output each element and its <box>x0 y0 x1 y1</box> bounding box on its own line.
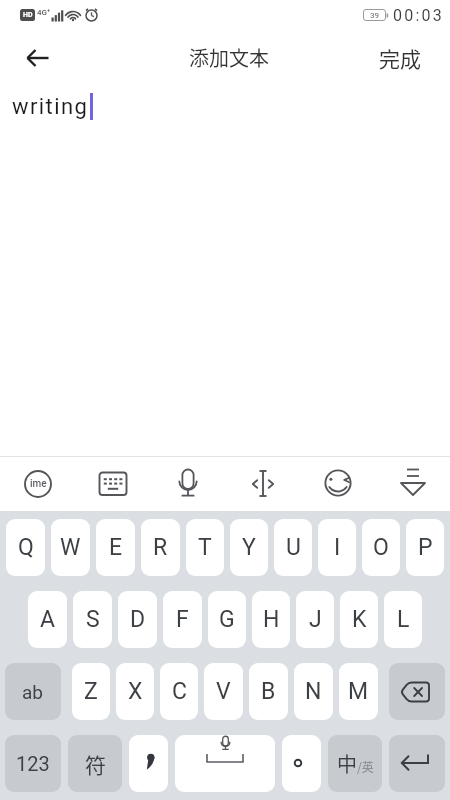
button[interactable]: W <box>51 519 90 576</box>
button[interactable]: C <box>160 663 198 720</box>
staticText: 添加文本 <box>189 43 269 72</box>
staticText: 123 <box>16 752 50 775</box>
staticText: H <box>263 606 280 633</box>
button[interactable] <box>129 735 168 792</box>
staticText: writing <box>12 94 89 120</box>
button[interactable]: S <box>73 591 112 648</box>
staticText: P <box>418 534 433 561</box>
button[interactable] <box>150 457 225 511</box>
staticText: ab <box>22 681 44 703</box>
staticText: 00:03 <box>393 6 444 25</box>
button[interactable]: B <box>249 663 288 720</box>
button[interactable] <box>225 457 300 511</box>
staticText: K <box>352 606 367 633</box>
button[interactable]: ime <box>0 457 75 511</box>
button[interactable] <box>300 457 375 511</box>
button[interactable]: ab <box>5 663 61 720</box>
button[interactable]: 中/英 <box>328 735 382 792</box>
button[interactable] <box>282 735 321 792</box>
staticText: Y <box>242 534 256 561</box>
staticText: J <box>309 606 322 633</box>
button[interactable]: J <box>296 591 334 648</box>
staticText: G <box>219 606 235 633</box>
button[interactable]: V <box>204 663 243 720</box>
button[interactable]: P <box>406 519 444 576</box>
button[interactable]: R <box>141 519 180 576</box>
staticText: 39 <box>370 11 379 20</box>
button[interactable]: H <box>252 591 290 648</box>
staticText: V <box>216 678 231 705</box>
button[interactable]: U <box>274 519 312 576</box>
button[interactable]: 123 <box>5 735 61 792</box>
staticText: M <box>348 678 369 705</box>
staticText: Q <box>18 534 34 561</box>
staticText: U <box>286 534 301 561</box>
button[interactable]: Z <box>72 663 110 720</box>
staticText: O <box>373 534 389 561</box>
button[interactable]: K <box>340 591 378 648</box>
button[interactable]: 符 <box>68 735 122 792</box>
button[interactable]: X <box>116 663 154 720</box>
staticText: I <box>334 534 341 561</box>
button[interactable] <box>175 735 275 792</box>
staticText: E <box>109 534 123 561</box>
staticText: Z <box>84 678 98 705</box>
staticText: B <box>261 678 276 705</box>
button[interactable]: L <box>384 591 422 648</box>
button[interactable]: F <box>163 591 202 648</box>
staticText: L <box>397 606 410 633</box>
button[interactable]: O <box>362 519 400 576</box>
staticText: A <box>40 606 56 633</box>
button[interactable]: G <box>208 591 246 648</box>
staticText: S <box>86 606 100 633</box>
button[interactable] <box>389 663 445 720</box>
staticText: ime <box>30 478 47 490</box>
button[interactable] <box>16 36 60 80</box>
button[interactable]: A <box>28 591 67 648</box>
staticText: T <box>198 534 212 561</box>
button[interactable]: T <box>186 519 224 576</box>
button[interactable]: D <box>118 591 157 648</box>
staticText: X <box>128 678 143 705</box>
staticText: F <box>176 606 189 633</box>
staticText: C <box>172 678 187 705</box>
button[interactable]: Y <box>230 519 268 576</box>
button[interactable]: Q <box>6 519 45 576</box>
staticText: 中/英 <box>337 749 374 778</box>
button[interactable]: I <box>318 519 356 576</box>
button[interactable]: M <box>339 663 378 720</box>
staticText: 完成 <box>379 43 421 73</box>
button[interactable]: 完成 <box>379 43 421 73</box>
staticText: R <box>153 534 168 561</box>
staticText: 符 <box>85 749 106 779</box>
staticText: 4G⁺ <box>37 8 51 17</box>
button[interactable]: E <box>96 519 135 576</box>
button[interactable] <box>389 735 445 792</box>
staticText: W <box>60 534 81 561</box>
staticText: HD <box>23 11 33 19</box>
staticText: N <box>305 678 322 705</box>
button[interactable] <box>375 457 450 511</box>
staticText: D <box>130 606 146 633</box>
button[interactable]: N <box>294 663 333 720</box>
button[interactable] <box>75 457 150 511</box>
